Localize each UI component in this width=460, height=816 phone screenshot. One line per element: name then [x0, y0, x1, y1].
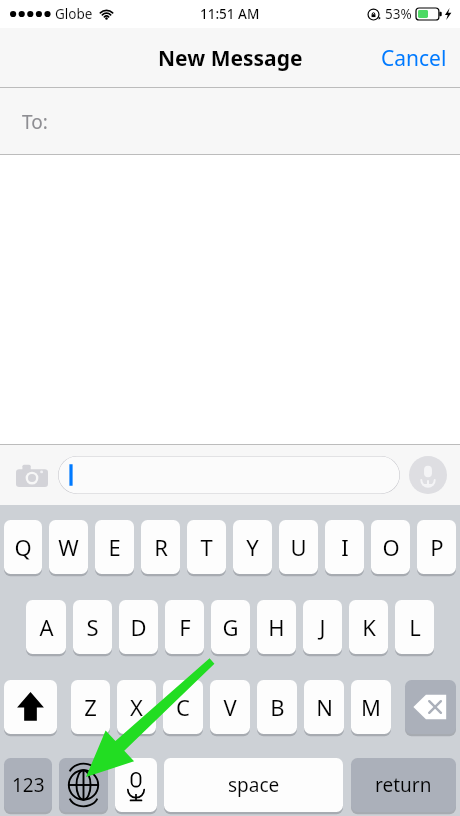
button[interactable]: 123 [4, 758, 52, 812]
staticText: Y [246, 532, 259, 562]
staticText: M [361, 692, 381, 722]
button[interactable]: W [49, 520, 88, 574]
button[interactable]: G [211, 600, 250, 654]
button[interactable]: S [73, 600, 112, 654]
staticText: S [86, 612, 99, 642]
staticText: 11:51 AM [200, 5, 260, 23]
staticText: H [268, 612, 285, 642]
button[interactable]: X [117, 680, 156, 734]
button[interactable]: Shift [4, 680, 57, 734]
staticText: Globe [55, 5, 93, 23]
button[interactable]: F [165, 600, 204, 654]
staticText: G [222, 612, 239, 642]
button[interactable]: Backspace [405, 680, 456, 734]
staticText: Cancel [381, 44, 447, 73]
button[interactable]: J [303, 600, 342, 654]
staticText: K [362, 612, 376, 642]
button[interactable]: R [141, 520, 180, 574]
staticText: V [223, 692, 237, 722]
button[interactable]: M [351, 680, 391, 734]
button[interactable]: N [304, 680, 344, 734]
button[interactable]: space [164, 758, 343, 812]
staticText: Q [14, 532, 32, 562]
staticText: N [316, 692, 333, 722]
button[interactable]: Q [4, 520, 42, 574]
button[interactable]: Cancel [368, 34, 460, 83]
button[interactable]: D [119, 600, 158, 654]
staticText: T [200, 532, 213, 562]
button[interactable]: T [187, 520, 226, 574]
staticText: W [58, 532, 79, 562]
button[interactable]: K [349, 600, 388, 654]
staticText: return [375, 772, 432, 798]
staticText: X [130, 692, 143, 722]
staticText: L [409, 612, 421, 642]
staticText: space [228, 772, 280, 798]
button[interactable]: Dictate [115, 758, 157, 812]
staticText: J [319, 612, 326, 642]
button[interactable]: O [371, 520, 410, 574]
staticText: To: [22, 109, 48, 135]
staticText: 123 [12, 772, 45, 798]
staticText: O [382, 532, 400, 562]
button[interactable]: Voice message [406, 453, 450, 497]
staticText: R [154, 532, 168, 562]
staticText: I [341, 532, 349, 562]
staticText: E [108, 532, 121, 562]
button[interactable]: Y [233, 520, 272, 574]
button[interactable]: P [417, 520, 456, 574]
staticText: Z [84, 692, 97, 722]
button[interactable]: Z [71, 680, 110, 734]
staticText: New Message [158, 44, 303, 73]
button[interactable]: U [279, 520, 318, 574]
button[interactable]: L [395, 600, 434, 654]
button[interactable]: C [163, 680, 203, 734]
button[interactable]: A [26, 600, 66, 654]
staticText: F [179, 612, 191, 642]
button[interactable]: V [210, 680, 250, 734]
button[interactable]: B [257, 680, 297, 734]
button[interactable]: Switch keyboard [59, 758, 108, 812]
button[interactable]: To: [0, 88, 460, 155]
button[interactable]: Camera [10, 453, 54, 497]
staticText: C [176, 692, 190, 722]
staticText: 53% [385, 5, 412, 23]
staticText: B [270, 692, 285, 722]
button[interactable]: H [257, 600, 296, 654]
staticText: P [430, 532, 444, 562]
staticText: U [290, 532, 307, 562]
staticText: D [130, 612, 147, 642]
button[interactable]: return [351, 758, 456, 812]
staticText: A [39, 612, 54, 642]
button[interactable] [58, 456, 400, 494]
button[interactable]: E [95, 520, 134, 574]
button[interactable]: I [325, 520, 364, 574]
